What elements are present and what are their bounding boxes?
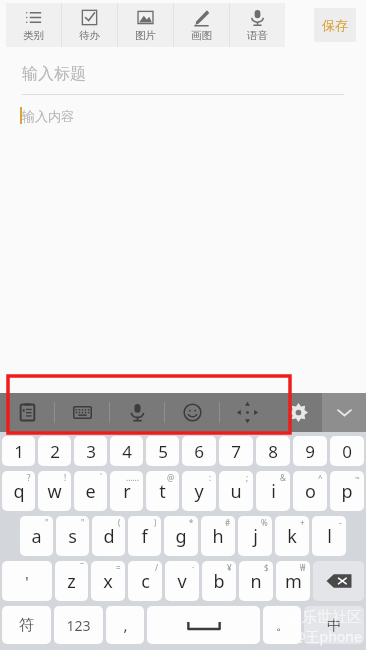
staticText: 中 — [327, 616, 342, 635]
button[interactable]: j — [238, 516, 272, 556]
staticText: = — [116, 562, 121, 573]
staticText: 图片 — [135, 29, 156, 42]
button[interactable]: 4 — [110, 436, 143, 466]
staticText: p — [341, 479, 353, 504]
button[interactable]: q — [2, 471, 35, 511]
button[interactable]: Voice input — [110, 393, 164, 432]
staticText: v — [177, 569, 187, 594]
button[interactable]: c — [128, 561, 162, 601]
button[interactable]: 待办 — [62, 3, 117, 47]
button[interactable]: 语音 — [230, 3, 285, 47]
button[interactable]: y — [182, 471, 216, 511]
button[interactable]: k — [275, 516, 309, 556]
button[interactable]: , — [106, 606, 144, 644]
staticText: n — [250, 569, 262, 594]
staticText: f — [141, 524, 148, 549]
button[interactable]: 输入内容 — [20, 107, 344, 124]
button[interactable]: 保存 — [314, 8, 356, 42]
button[interactable]: Settings — [274, 393, 322, 432]
staticText: j — [253, 524, 258, 549]
staticText: 类别 — [23, 29, 44, 42]
button[interactable]: m — [276, 561, 310, 601]
button[interactable]: g — [164, 516, 198, 556]
staticText: 1 — [14, 440, 24, 463]
button[interactable]: d — [92, 516, 125, 556]
staticText: x — [103, 569, 113, 594]
staticText: 8 — [268, 440, 278, 463]
staticText: a — [31, 524, 42, 549]
button[interactable]: w — [38, 471, 71, 511]
button[interactable]: n — [239, 561, 273, 601]
button[interactable]: a — [20, 516, 53, 556]
button[interactable]: 8 — [256, 436, 290, 466]
staticText: * — [189, 517, 194, 528]
button[interactable]: s — [56, 516, 89, 556]
button[interactable]: 1 — [2, 436, 35, 466]
button[interactable]: Hide keyboard — [322, 393, 366, 432]
button[interactable]: 9 — [293, 436, 327, 466]
button[interactable]: z — [55, 561, 88, 601]
button[interactable]: r — [110, 471, 143, 511]
button[interactable]: 。 — [263, 606, 301, 644]
staticText: i — [271, 479, 276, 504]
button[interactable]: 图片 — [118, 3, 173, 47]
button[interactable]: l — [312, 516, 346, 556]
staticText: ; — [246, 472, 249, 483]
button[interactable]: h — [201, 516, 235, 556]
button[interactable]: 5 — [146, 436, 179, 466]
button[interactable]: v — [165, 561, 199, 601]
button[interactable]: Clipboard — [0, 393, 54, 432]
button[interactable]: 中 — [304, 606, 364, 644]
button[interactable]: Move keyboard — [220, 393, 274, 432]
button[interactable]: x — [91, 561, 125, 601]
staticText: 7 — [231, 440, 241, 463]
staticText: q — [13, 479, 25, 504]
staticText: $ — [264, 562, 269, 573]
button[interactable]: Space — [147, 606, 260, 644]
button[interactable]: ' — [2, 561, 52, 601]
staticText: e — [85, 479, 96, 504]
staticText: o — [305, 479, 316, 504]
staticText: u — [230, 479, 242, 504]
button[interactable]: 类别 — [6, 3, 61, 47]
button[interactable]: u — [219, 471, 253, 511]
button[interactable]: i — [256, 471, 290, 511]
staticText: & — [280, 472, 286, 483]
button[interactable]: 7 — [219, 436, 253, 466]
staticText: l — [327, 524, 332, 549]
staticText: c — [141, 569, 150, 594]
staticText: 盖乐世社区 — [287, 608, 362, 627]
button[interactable]: f — [128, 516, 161, 556]
staticText: k — [287, 524, 297, 549]
button[interactable]: 输入标题 — [22, 64, 344, 95]
staticText: t — [159, 479, 166, 504]
staticText: 画图 — [191, 29, 212, 42]
button[interactable]: 画图 — [174, 3, 229, 47]
button[interactable]: o — [293, 471, 327, 511]
staticText: ‾ — [80, 562, 84, 573]
staticText: 123 — [66, 616, 91, 635]
button[interactable]: Keyboard — [55, 393, 109, 432]
button[interactable]: Backspace — [313, 561, 364, 601]
staticText: @王phone — [293, 627, 362, 646]
button[interactable]: 6 — [182, 436, 216, 466]
staticText: 语音 — [247, 29, 268, 42]
staticText: 输入内容 — [22, 108, 74, 124]
staticText: · — [192, 562, 195, 573]
button[interactable]: 0 — [330, 436, 364, 466]
button[interactable]: p — [330, 471, 364, 511]
button[interactable]: Emoji — [165, 393, 219, 432]
staticText: + — [300, 517, 305, 528]
button[interactable]: 2 — [38, 436, 71, 466]
staticText: 符 — [19, 616, 34, 635]
staticText: ~ — [355, 472, 360, 483]
staticText: g — [175, 524, 187, 549]
button[interactable]: 123 — [54, 606, 103, 644]
button[interactable]: 符 — [2, 606, 51, 644]
button[interactable]: e — [74, 471, 107, 511]
button[interactable]: t — [146, 471, 179, 511]
button[interactable]: 3 — [74, 436, 107, 466]
staticText: ` — [100, 472, 103, 483]
button[interactable]: b — [202, 561, 236, 601]
staticText: m — [285, 569, 302, 594]
